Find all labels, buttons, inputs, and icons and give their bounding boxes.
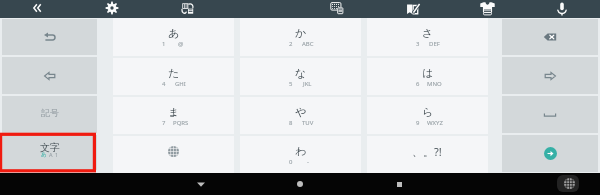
staticText: @ <box>178 40 184 48</box>
staticText: さ <box>422 26 434 40</box>
staticText: た <box>168 66 180 80</box>
staticText: あ <box>41 151 47 158</box>
button[interactable]: な <box>240 58 361 95</box>
button[interactable]: Home <box>285 173 315 195</box>
staticText: TUV <box>302 119 314 127</box>
staticText: わ <box>295 144 307 158</box>
staticText: や <box>295 105 307 119</box>
button[interactable]: Space <box>502 96 598 133</box>
staticText: 、。?! <box>412 144 442 159</box>
staticText: A <box>49 151 53 158</box>
staticText: ら <box>422 105 434 119</box>
button[interactable]: Cursor left <box>2 57 97 94</box>
button[interactable]: は <box>367 58 488 95</box>
button[interactable]: Recent apps <box>384 173 414 195</box>
staticText: 4 <box>162 80 166 88</box>
staticText: - <box>307 158 309 166</box>
button[interactable]: や <box>240 97 361 134</box>
staticText: あ <box>168 26 180 40</box>
button[interactable]: Change language <box>113 136 234 173</box>
staticText: 5 <box>289 80 293 88</box>
button[interactable]: Enter <box>502 135 598 172</box>
button[interactable]: Undo <box>2 19 97 55</box>
staticText: 文字 <box>40 141 60 154</box>
button[interactable]: か <box>240 18 361 56</box>
staticText: 3 <box>416 40 420 48</box>
staticText: 0 <box>289 158 293 166</box>
staticText: 8 <box>289 119 293 127</box>
staticText: な <box>295 66 307 80</box>
staticText: 記号 <box>41 107 59 118</box>
button[interactable]: あ <box>113 18 234 56</box>
button[interactable]: Cursor right <box>502 57 598 94</box>
staticText: DEF <box>429 40 440 48</box>
button[interactable]: Back <box>186 173 216 195</box>
button[interactable]: わ <box>240 136 361 173</box>
button[interactable]: 記号 <box>2 96 97 133</box>
button[interactable]: た <box>113 58 234 95</box>
staticText: ABC <box>302 40 314 48</box>
button[interactable]: ら <box>367 97 488 134</box>
staticText: か <box>295 26 307 40</box>
staticText: MNO <box>427 80 442 88</box>
button[interactable]: Handwriting input <box>170 0 204 18</box>
staticText: ま <box>168 105 180 119</box>
staticText: GHI <box>175 80 186 88</box>
button[interactable]: 文字 <box>2 135 97 170</box>
staticText: JKL <box>303 80 312 88</box>
staticText: 7 <box>162 119 166 127</box>
button[interactable]: さ <box>367 18 488 56</box>
button[interactable]: Backspace <box>502 19 598 55</box>
staticText: WXYZ <box>427 119 443 127</box>
button[interactable]: Collapse keyboard <box>20 0 54 18</box>
button[interactable]: Settings <box>95 0 129 18</box>
staticText: 1 <box>162 40 166 48</box>
staticText: 9 <box>416 119 420 127</box>
button[interactable]: 、。?! <box>367 136 488 173</box>
button[interactable]: ま <box>113 97 234 134</box>
button[interactable]: Keyboard layout <box>320 0 354 18</box>
staticText: は <box>422 66 434 80</box>
button[interactable]: Dictionary <box>396 0 430 18</box>
staticText: 6 <box>416 80 420 88</box>
button[interactable]: Theme <box>470 0 504 18</box>
button[interactable]: Voice input <box>545 0 579 18</box>
button[interactable]: Switch input method <box>557 175 579 192</box>
staticText: 1 <box>55 151 59 158</box>
staticText: PQRS <box>173 119 189 127</box>
staticText: 2 <box>289 40 293 48</box>
